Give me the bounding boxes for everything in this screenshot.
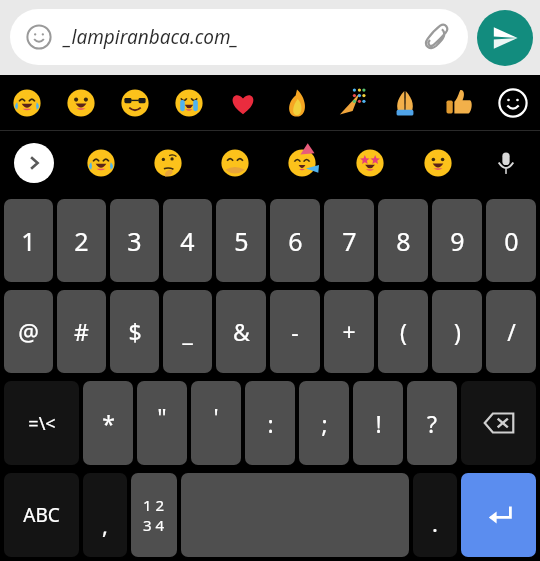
staticText: * [102, 408, 115, 439]
button[interactable]: 1 2 [131, 473, 177, 557]
staticText: " [157, 401, 167, 432]
button[interactable]: Emoji [10, 9, 468, 65]
staticText: + [342, 316, 356, 347]
button[interactable]: ABC [4, 473, 79, 557]
staticText: _lampiranbaca.com_ [64, 24, 418, 50]
staticText: _ [182, 316, 193, 347]
button[interactable]: Enter [461, 473, 536, 557]
button[interactable]: More emoji [486, 75, 540, 130]
staticText: @ [18, 316, 39, 347]
button[interactable]: Fire [270, 75, 324, 130]
button[interactable]: Partying face [268, 131, 336, 195]
button[interactable]: * [83, 381, 133, 465]
staticText: 1 [21, 224, 36, 258]
button[interactable]: / [486, 290, 536, 373]
button[interactable]: Grinning face with big eyes [404, 131, 472, 195]
button[interactable]: & [216, 290, 266, 373]
staticText: =\< [28, 411, 56, 436]
staticText: / [507, 316, 516, 347]
staticText: ? [427, 408, 437, 439]
button[interactable]: 4 [163, 199, 212, 282]
staticText: # [74, 316, 89, 347]
button[interactable]: - [270, 290, 320, 373]
staticText: 0 [504, 224, 519, 258]
button[interactable]: =\< [4, 381, 79, 465]
staticText: 3 [127, 224, 142, 258]
staticText: 4 [180, 224, 195, 258]
button[interactable]: ) [432, 290, 482, 373]
staticText: 8 [396, 224, 411, 258]
button[interactable]: Expand [0, 131, 67, 195]
button[interactable]: 5 [216, 199, 266, 282]
staticText: 1 2 [143, 495, 165, 515]
staticText: $ [128, 316, 142, 347]
staticText: ( [400, 316, 407, 347]
button[interactable]: ( [378, 290, 428, 373]
button[interactable]: Party popper [324, 75, 378, 130]
staticText: , [102, 510, 108, 540]
button[interactable]: Red heart [216, 75, 270, 130]
button[interactable]: + [324, 290, 374, 373]
staticText: 3 4 [143, 515, 165, 535]
staticText: 6 [288, 224, 303, 258]
button[interactable]: Face with hand over mouth [201, 131, 268, 195]
button[interactable]: Thinking face [134, 131, 201, 195]
button[interactable]: Face with tears of joy [67, 131, 134, 195]
button[interactable]: Grinning face [54, 75, 108, 130]
button[interactable]: Loudly crying face [162, 75, 216, 130]
button[interactable]: Backspace [461, 381, 536, 465]
button[interactable]: 0 [486, 199, 536, 282]
button[interactable]: 2 [57, 199, 106, 282]
button[interactable]: Thumbs up [432, 75, 486, 130]
staticText: - [291, 316, 299, 347]
button[interactable]: _ [163, 290, 212, 373]
staticText: ABC [23, 502, 60, 528]
button[interactable]: : [245, 381, 295, 465]
staticText: 7 [342, 224, 357, 258]
button[interactable]: Space [181, 473, 409, 557]
button[interactable]: " [137, 381, 187, 465]
staticText: 9 [450, 224, 465, 258]
button[interactable]: Smiling face with sunglasses [108, 75, 162, 130]
button[interactable]: 1 [4, 199, 53, 282]
staticText: ; [321, 408, 328, 439]
staticText: 5 [234, 224, 249, 258]
button[interactable]: Send [477, 10, 533, 66]
staticText: : [267, 408, 274, 439]
button[interactable]: 3 [110, 199, 159, 282]
button[interactable]: Attach [418, 19, 454, 55]
button[interactable]: ; [299, 381, 349, 465]
staticText: . [432, 508, 438, 538]
button[interactable]: ' [191, 381, 241, 465]
button[interactable]: 6 [270, 199, 320, 282]
button[interactable]: 8 [378, 199, 428, 282]
button[interactable]: 9 [432, 199, 482, 282]
button[interactable]: Emoji [22, 20, 56, 54]
staticText: ' [213, 401, 219, 432]
button[interactable]: , [83, 473, 127, 557]
staticText: ! [375, 408, 382, 439]
button[interactable]: $ [110, 290, 159, 373]
button[interactable]: Voice input [472, 131, 540, 195]
staticText: 2 [74, 224, 89, 258]
button[interactable]: Star-struck [336, 131, 404, 195]
button[interactable]: Face with tears of joy [0, 75, 54, 130]
button[interactable]: ? [407, 381, 457, 465]
button[interactable]: Folded hands [378, 75, 432, 130]
staticText: ) [454, 316, 461, 347]
button[interactable]: # [57, 290, 106, 373]
button[interactable]: @ [4, 290, 53, 373]
button[interactable]: 7 [324, 199, 374, 282]
button[interactable]: . [413, 473, 457, 557]
staticText: & [233, 316, 250, 347]
button[interactable]: ! [353, 381, 403, 465]
